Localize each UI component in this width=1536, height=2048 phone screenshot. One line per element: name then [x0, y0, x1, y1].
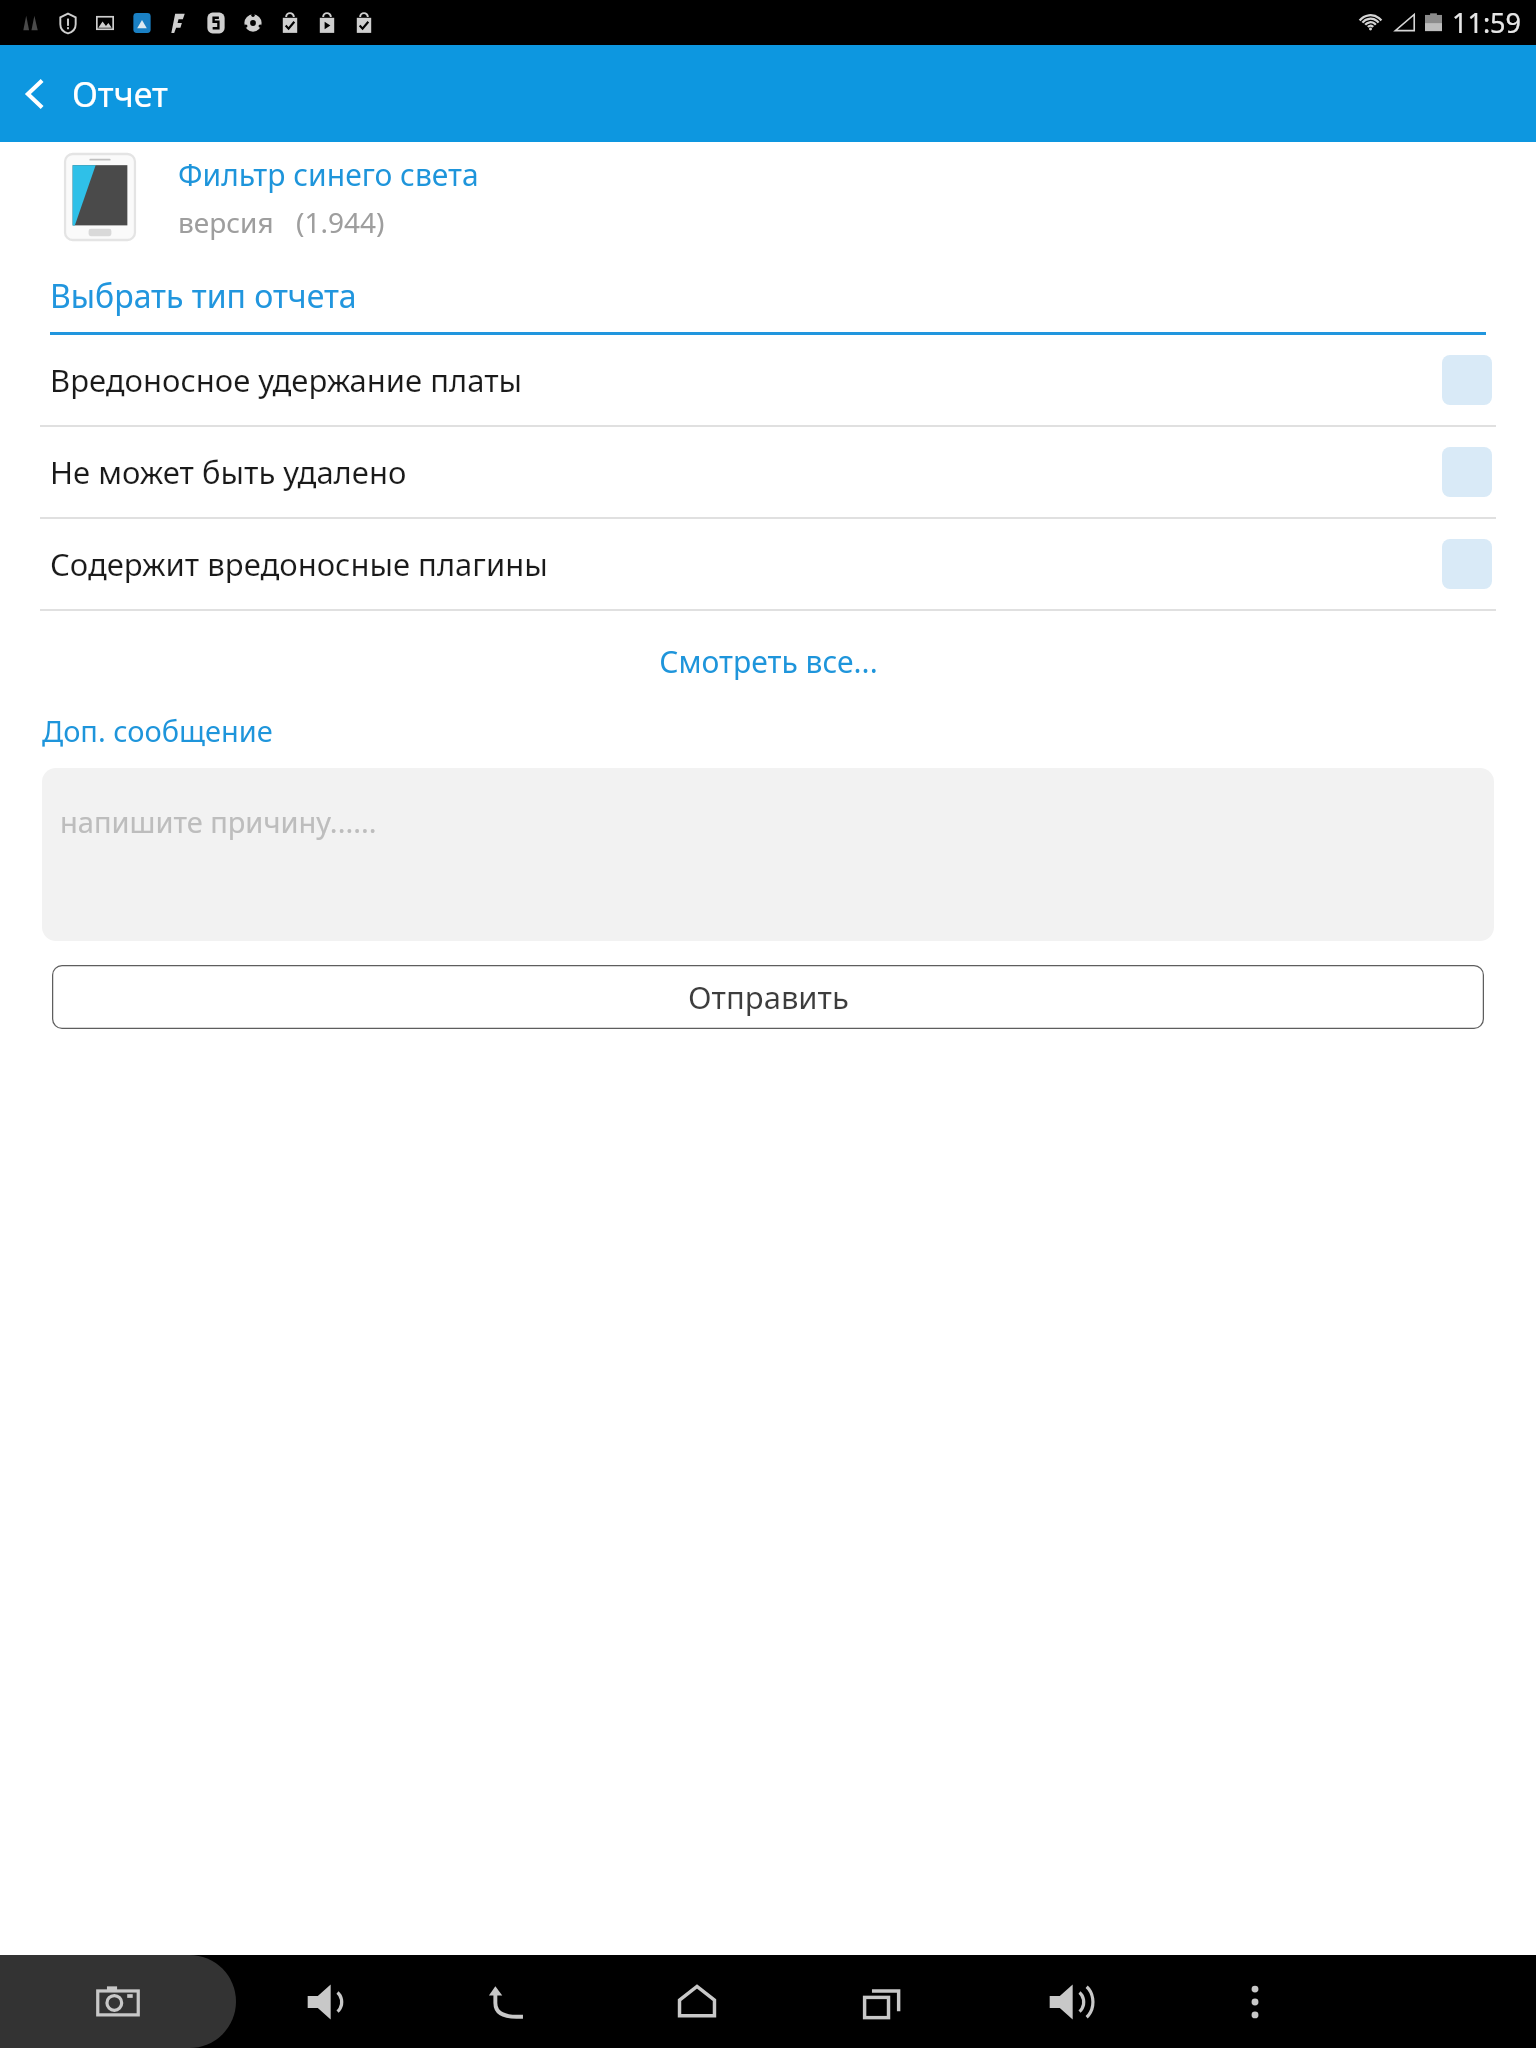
staticText: напишите причину...... [60, 802, 377, 841]
staticText: Доп. сообщение [42, 711, 273, 750]
staticText: Смотреть все... [659, 641, 878, 682]
button[interactable]: Отправить [52, 965, 1484, 1029]
button[interactable]: Camera [0, 1955, 236, 2048]
button[interactable]: напишите причину...... [42, 768, 1494, 941]
button[interactable]: More options [1162, 1955, 1348, 2048]
staticText: версия [178, 203, 274, 241]
staticText: Вредоносное удержание платы [50, 359, 1442, 401]
staticText: Выбрать тип отчета [50, 274, 357, 318]
staticText: (1.944) [296, 203, 385, 241]
button[interactable]: Содержит вредоносные плагины [0, 519, 1536, 611]
button[interactable]: Вредоносное удержание платы [0, 335, 1536, 427]
button[interactable]: Смотреть все... [0, 611, 1536, 711]
staticText: Отправить [688, 976, 849, 1018]
staticText: 11:59 [1452, 4, 1522, 41]
button[interactable]: Recents [790, 1955, 976, 2048]
button[interactable]: Не может быть удалено [0, 427, 1536, 519]
button[interactable]: Volume down [236, 1955, 418, 2048]
button[interactable]: Volume up [976, 1955, 1162, 2048]
staticText: Не может быть удалено [50, 451, 1442, 493]
button[interactable]: Back [418, 1955, 604, 2048]
staticText: Фильтр синего света [178, 154, 479, 195]
button[interactable]: Home [604, 1955, 790, 2048]
staticText: Отчет [72, 71, 168, 117]
staticText: Содержит вредоносные плагины [50, 543, 1442, 585]
button[interactable]: Back [0, 58, 72, 130]
